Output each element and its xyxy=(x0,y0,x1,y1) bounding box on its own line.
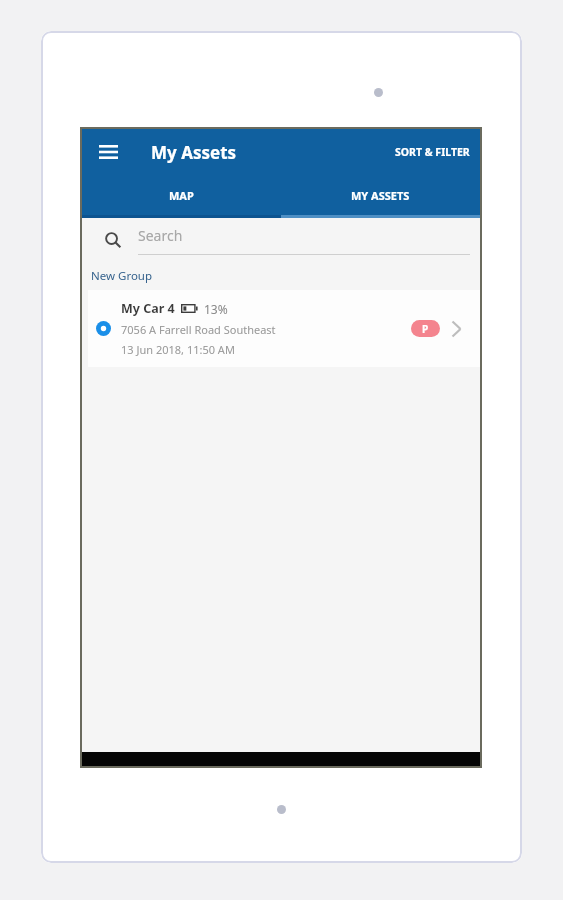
button[interactable]: Parked status xyxy=(411,320,440,337)
button[interactable]: Open navigation menu xyxy=(91,135,125,169)
button[interactable]: SORT & FILTER xyxy=(391,139,474,165)
button[interactable]: View asset details xyxy=(440,309,472,349)
staticText: MY ASSETS xyxy=(351,188,410,203)
staticText: New Group xyxy=(91,268,153,284)
staticText: My Car 4 xyxy=(121,300,175,317)
button[interactable]: MY ASSETS xyxy=(281,175,480,215)
staticText: 13 Jun 2018, 11:50 AM xyxy=(121,342,235,357)
staticText: My Assets xyxy=(151,141,237,164)
staticText: SORT & FILTER xyxy=(395,145,470,159)
staticText: P xyxy=(422,322,429,336)
button[interactable]: Search xyxy=(100,227,126,253)
staticText: MAP xyxy=(169,188,194,203)
staticText: 13% xyxy=(204,301,228,317)
button[interactable]: My Car 4 xyxy=(88,290,480,367)
button[interactable]: MAP xyxy=(82,175,281,215)
staticText: 7056 A Farrell Road Southeast xyxy=(121,322,276,337)
staticText: Search xyxy=(138,226,183,245)
